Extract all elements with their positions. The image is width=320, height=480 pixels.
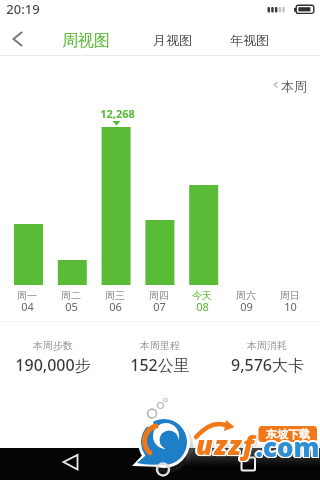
staticText: .com bbox=[254, 428, 319, 463]
staticText: uzzf bbox=[196, 424, 255, 461]
staticText: uzzf bbox=[195, 427, 254, 464]
staticText: 9,576大卡 bbox=[231, 354, 304, 376]
staticText: 周视图 bbox=[62, 31, 110, 51]
staticText: .com bbox=[256, 428, 320, 463]
staticText: uzzf bbox=[195, 425, 254, 462]
staticText: 04 bbox=[21, 299, 34, 314]
staticText: 周一 bbox=[17, 289, 37, 302]
staticText: .com bbox=[253, 429, 318, 464]
staticText: 190,000步 bbox=[15, 354, 91, 376]
staticText: 06 bbox=[109, 299, 122, 314]
button[interactable] bbox=[204, 448, 290, 480]
staticText: 东坡下载 bbox=[266, 427, 310, 441]
staticText: 周三 bbox=[105, 289, 125, 302]
staticText: 152公里 bbox=[130, 354, 190, 376]
staticText: .com bbox=[254, 430, 319, 465]
staticText: uzzf bbox=[194, 426, 253, 463]
staticText: 08 bbox=[196, 299, 209, 314]
staticText: 本周 bbox=[281, 78, 307, 94]
button[interactable]: 周视图 bbox=[41, 28, 131, 54]
staticText: 周二 bbox=[61, 289, 81, 302]
staticText: .com bbox=[256, 429, 320, 464]
staticText: 05 bbox=[65, 299, 78, 314]
staticText: 周日 bbox=[280, 289, 300, 302]
button[interactable] bbox=[30, 448, 116, 480]
staticText: 09 bbox=[240, 299, 253, 314]
staticText: 12,268 bbox=[100, 106, 135, 121]
button[interactable]: 月视图 bbox=[132, 27, 212, 53]
staticText: uzzf bbox=[196, 426, 255, 463]
staticText: uzzf bbox=[197, 425, 256, 462]
staticText: .com bbox=[255, 430, 320, 465]
staticText: uzzf bbox=[196, 427, 255, 464]
staticText: 周四 bbox=[149, 289, 169, 302]
button[interactable] bbox=[0, 22, 40, 56]
staticText: 07 bbox=[153, 299, 166, 314]
button[interactable]: 年视图 bbox=[209, 27, 289, 53]
staticText: uzzf bbox=[197, 427, 256, 464]
staticText: .com bbox=[255, 427, 320, 462]
staticText: 今天 bbox=[192, 289, 212, 302]
staticText: uzzf bbox=[198, 428, 257, 465]
staticText: 周六 bbox=[236, 289, 256, 302]
staticText: 月视图 bbox=[153, 32, 192, 48]
staticText: .com bbox=[255, 429, 320, 464]
button[interactable] bbox=[117, 448, 203, 480]
staticText: .com bbox=[256, 430, 320, 465]
staticText: 20:19 bbox=[6, 0, 40, 18]
staticText: 本周消耗 bbox=[247, 339, 287, 352]
staticText: 本周里程 bbox=[140, 339, 180, 352]
button[interactable]: 本周 bbox=[274, 73, 314, 99]
staticText: uzzf bbox=[197, 426, 256, 463]
staticText: 年视图 bbox=[230, 32, 269, 48]
staticText: 10 bbox=[284, 299, 297, 314]
staticText: 本周步数 bbox=[33, 339, 73, 352]
